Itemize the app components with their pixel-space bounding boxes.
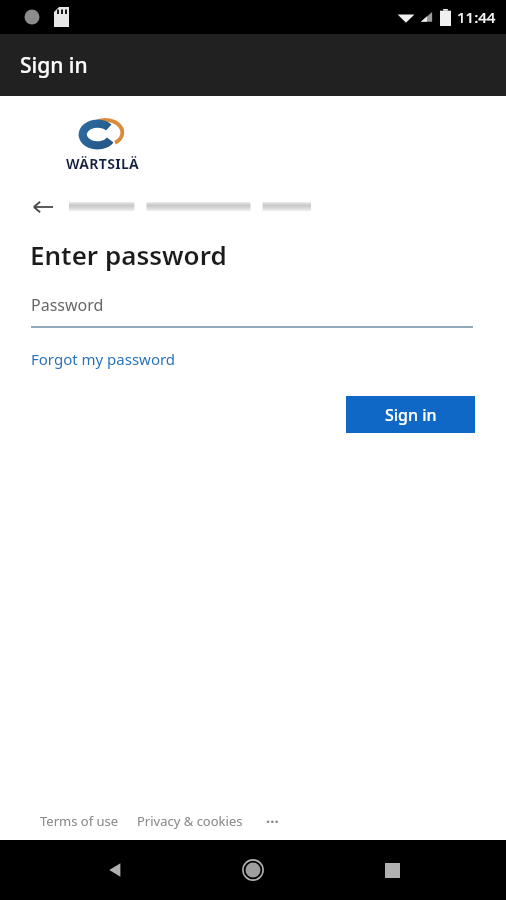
staticText: Enter password (30, 237, 227, 272)
staticText: Privacy & cookies (137, 812, 243, 830)
staticText: WÄRTSILÄ (66, 154, 140, 173)
staticText: ··· (266, 811, 279, 831)
staticText: Sign in (20, 51, 88, 80)
staticText: Terms of use (40, 812, 119, 830)
button[interactable]: Back (31, 195, 475, 219)
other: Back (31, 195, 55, 219)
button[interactable]: Terms of use (40, 812, 119, 830)
button[interactable]: More options (259, 811, 285, 831)
staticText: Sign in (385, 404, 437, 426)
staticText: Password (31, 294, 104, 316)
button[interactable]: Privacy & cookies (137, 812, 243, 830)
staticText: 11:44 (457, 7, 496, 27)
button[interactable]: Back (91, 846, 139, 894)
button[interactable]: Recent apps (368, 846, 416, 894)
button[interactable]: Sign in (346, 396, 475, 433)
button[interactable]: Forgot my password (31, 349, 176, 369)
staticText: Forgot my password (31, 349, 176, 369)
button[interactable]: Password (31, 294, 473, 328)
button[interactable]: Home (229, 846, 277, 894)
